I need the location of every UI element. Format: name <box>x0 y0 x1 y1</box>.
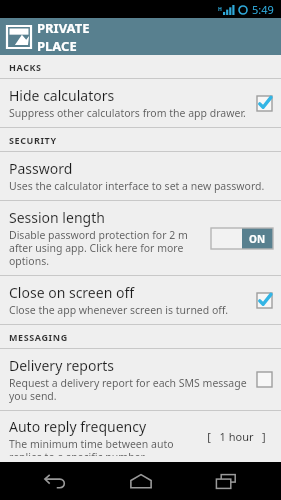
button[interactable]: Password <box>0 152 281 201</box>
button[interactable]: [ 1 hour ] <box>199 429 273 444</box>
staticText: Disable password protection for 2 m afte… <box>9 228 205 268</box>
staticText: Close on screen off <box>9 283 135 302</box>
button[interactable]: Home <box>111 462 171 500</box>
button[interactable]: Close on screen off <box>0 276 281 325</box>
staticText: HACKS <box>9 61 42 73</box>
staticText: The minimum time between auto replies to… <box>9 437 195 456</box>
staticText: Uses the calculator interface to set a n… <box>9 179 265 193</box>
staticText: Suppress other calculators from the app … <box>9 106 246 120</box>
button[interactable]: Hide calculators <box>0 79 281 128</box>
staticText: SECURITY <box>9 134 57 146</box>
staticText: Hide calculators <box>9 86 115 105</box>
staticText: H <box>218 6 222 13</box>
staticText: PRIVATE <box>37 19 90 37</box>
staticText: Request a delivery report for each SMS m… <box>9 376 250 403</box>
staticText: ON <box>249 232 266 246</box>
staticText: PLACE <box>37 37 77 55</box>
staticText: Password <box>9 159 73 178</box>
button[interactable]: Recent apps <box>196 462 256 500</box>
staticText: 5:49 <box>252 2 274 17</box>
staticText: Delivery reports <box>9 356 114 375</box>
button[interactable]: Session length <box>0 201 281 276</box>
button[interactable]: PRIVATE <box>0 18 281 55</box>
button[interactable]: Back <box>25 462 85 500</box>
staticText: Close the app whenever screen is turned … <box>9 303 229 317</box>
button[interactable]: Delivery reports <box>0 349 281 411</box>
button[interactable]: Session length toggle, on <box>211 228 273 249</box>
staticText: [ 1 hour ] <box>207 429 266 444</box>
button[interactable]: Auto reply frequency <box>0 411 281 462</box>
staticText: Session length <box>9 208 105 227</box>
staticText: Auto reply frequency <box>9 417 147 436</box>
staticText: MESSAGING <box>9 331 68 343</box>
